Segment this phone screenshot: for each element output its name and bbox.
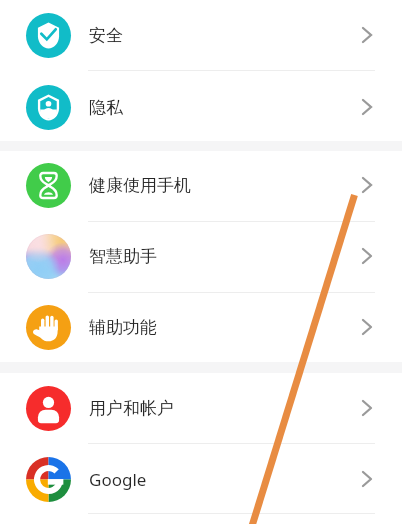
staticText: 健康使用手机 bbox=[89, 175, 191, 196]
staticText: 辅助功能 bbox=[89, 317, 157, 338]
button[interactable]: 辅助功能 bbox=[0, 296, 402, 358]
button[interactable]: 用户和帐户 bbox=[0, 377, 402, 439]
staticText: 用户和帐户 bbox=[89, 398, 174, 419]
button[interactable]: 隐私 bbox=[0, 76, 402, 138]
button[interactable]: 健康使用手机 bbox=[0, 154, 402, 216]
staticText: Google bbox=[89, 468, 147, 491]
button[interactable]: 智慧助手 bbox=[0, 225, 402, 287]
button[interactable]: 安全 bbox=[0, 4, 402, 66]
staticText: 智慧助手 bbox=[89, 246, 157, 267]
button[interactable]: Google bbox=[0, 448, 402, 510]
staticText: 安全 bbox=[89, 25, 123, 46]
staticText: 隐私 bbox=[89, 97, 123, 118]
